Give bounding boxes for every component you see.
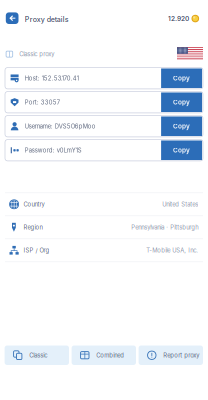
staticText: Classic proxy xyxy=(19,51,54,58)
button[interactable]: Combined xyxy=(72,345,136,365)
staticText: Country xyxy=(23,201,44,208)
staticText: Host: 152.53.170.41 xyxy=(25,75,79,82)
button[interactable]: Copy xyxy=(161,68,202,88)
button[interactable]: Back xyxy=(6,12,18,24)
button[interactable]: Classic xyxy=(5,345,69,365)
staticText: United States xyxy=(162,201,198,208)
button[interactable]: Copy xyxy=(161,116,202,136)
staticText: T-Mobile USA, Inc. xyxy=(146,247,198,254)
button[interactable]: Copy xyxy=(161,92,202,112)
staticText: Pennsylvania · Pittsburgh xyxy=(131,224,198,231)
button[interactable]: Copy xyxy=(161,140,202,160)
staticText: Copy xyxy=(173,98,190,106)
staticText: Region xyxy=(23,224,42,231)
staticText: Report proxy xyxy=(163,352,199,359)
staticText: Proxy details xyxy=(25,15,69,24)
staticText: Port: 33057 xyxy=(25,99,60,106)
staticText: Username: DVS5O6pMoo xyxy=(25,123,96,130)
staticText: 12.920 xyxy=(168,15,189,22)
staticText: ISP / Org xyxy=(23,247,49,254)
staticText: Password: v0LmY1S xyxy=(25,147,82,154)
staticText: Copy xyxy=(173,146,190,154)
staticText: Copy xyxy=(173,74,190,82)
staticText: Classic xyxy=(29,352,47,359)
staticText: Combined xyxy=(96,352,124,359)
button[interactable]: Report proxy xyxy=(139,345,203,365)
staticText: Copy xyxy=(173,122,190,130)
